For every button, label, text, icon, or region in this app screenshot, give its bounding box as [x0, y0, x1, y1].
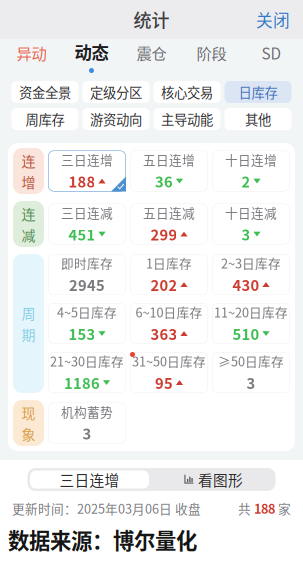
staticText: 五日连减 — [143, 203, 195, 221]
staticText: 3 — [246, 372, 255, 393]
staticText: 数据来源：博尔量化 — [8, 524, 197, 555]
staticText: 363 — [150, 323, 177, 344]
staticText: 2 — [241, 171, 250, 192]
button[interactable]: 资金全景 — [11, 81, 78, 103]
button[interactable]: 1日库存 — [130, 254, 208, 295]
staticText: 三日连增 — [61, 150, 113, 168]
staticText: 阶段 — [196, 42, 226, 64]
button[interactable]: 阶段 — [181, 39, 241, 78]
staticText: 三日连增 — [59, 469, 119, 490]
staticText: SD — [261, 42, 281, 64]
button[interactable]: 游资动向 — [82, 108, 149, 130]
staticText: 3 — [82, 423, 91, 444]
button[interactable]: SD — [241, 39, 301, 78]
button[interactable]: 五日连增 — [130, 150, 208, 191]
staticText: 连 — [21, 203, 35, 223]
staticText: 21~30日库存 — [50, 352, 124, 370]
staticText: 周 — [21, 303, 35, 323]
staticText: 510 — [232, 323, 259, 344]
staticText: 周库存 — [25, 109, 64, 129]
staticText: 153 — [68, 323, 95, 344]
button[interactable]: 31~50日库存 — [130, 352, 208, 393]
button[interactable]: 异动 — [1, 39, 61, 78]
staticText: 减 — [21, 224, 35, 245]
staticText: 主导动能 — [161, 109, 213, 129]
staticText: 即时库存 — [61, 254, 113, 272]
staticText: 299 — [150, 224, 177, 245]
button[interactable]: ≥50日库存 — [212, 352, 290, 393]
staticText: 3 — [241, 224, 250, 245]
button[interactable]: 21~30日库存 — [48, 352, 126, 393]
staticText: 95 — [155, 372, 173, 393]
staticText: 期 — [21, 324, 35, 344]
staticText: 家 — [275, 499, 291, 517]
button[interactable]: 周库存 — [11, 108, 78, 130]
staticText: 188 — [254, 499, 275, 517]
staticText: 十日连增 — [225, 150, 277, 168]
button[interactable]: 核心交易 — [153, 81, 220, 103]
staticText: 游资动向 — [90, 109, 142, 129]
button[interactable]: 三日连增 — [27, 468, 151, 491]
staticText: 十日连减 — [225, 203, 277, 221]
staticText: 2945 — [69, 274, 105, 295]
staticText: ≥50日库存 — [218, 352, 284, 370]
staticText: 36 — [155, 171, 173, 192]
staticText: 451 — [68, 224, 95, 245]
staticText: 其他 — [245, 109, 271, 129]
staticText: 2~3日库存 — [221, 254, 281, 272]
button[interactable]: 十日连减 — [212, 203, 290, 244]
staticText: 看图形 — [198, 469, 243, 490]
button[interactable]: 动态 — [61, 39, 121, 78]
staticText: 188 — [68, 171, 95, 192]
staticText: 增 — [21, 171, 35, 192]
staticText: 4~5日库存 — [57, 303, 117, 321]
staticText: 更新时间：2025年03月06日 收盘 — [12, 499, 201, 517]
button[interactable]: 关闭 — [256, 7, 303, 31]
staticText: 核心交易 — [161, 82, 213, 102]
staticText: 11~20日库存 — [214, 303, 288, 321]
staticText: 202 — [150, 274, 177, 295]
staticText: 连 — [21, 150, 35, 170]
staticText: 震仓 — [136, 42, 166, 64]
button[interactable]: 震仓 — [121, 39, 181, 78]
staticText: 1日库存 — [146, 254, 192, 272]
button[interactable]: 即时库存 — [48, 254, 126, 295]
staticText: 430 — [232, 274, 259, 295]
staticText: 共 — [238, 499, 254, 517]
button[interactable]: 日库存 — [224, 81, 291, 103]
button[interactable]: 十日连增 — [212, 150, 290, 191]
button[interactable]: 4~5日库存 — [48, 303, 126, 344]
staticText: 五日连增 — [143, 150, 195, 168]
staticText: 三日连减 — [61, 203, 113, 221]
staticText: 现 — [21, 402, 35, 422]
button[interactable]: 三日连增 — [48, 150, 126, 191]
button[interactable]: 其他 — [224, 108, 291, 130]
button[interactable]: 主导动能 — [153, 108, 220, 130]
staticText: 1186 — [64, 372, 100, 393]
button[interactable]: 五日连减 — [130, 203, 208, 244]
staticText: 6~10日库存 — [135, 303, 202, 321]
button[interactable]: 6~10日库存 — [130, 303, 208, 344]
staticText: 象 — [21, 423, 35, 444]
button[interactable]: 看图形 — [151, 468, 275, 491]
staticText: 动态 — [74, 39, 108, 64]
button[interactable]: 11~20日库存 — [212, 303, 290, 344]
staticText: 关闭 — [256, 7, 290, 31]
staticText: 日库存 — [238, 82, 277, 102]
staticText: 异动 — [16, 42, 46, 64]
staticText: 资金全景 — [19, 82, 71, 102]
staticText: 定级分区 — [90, 82, 142, 102]
button[interactable]: 三日连减 — [48, 203, 126, 244]
staticText: 31~50日库存 — [132, 352, 206, 370]
staticText: 统计 — [133, 6, 169, 33]
button[interactable]: 2~3日库存 — [212, 254, 290, 295]
button[interactable]: 定级分区 — [82, 81, 149, 103]
staticText: 机构蓄势 — [61, 402, 113, 420]
button[interactable]: 机构蓄势 — [48, 402, 126, 443]
